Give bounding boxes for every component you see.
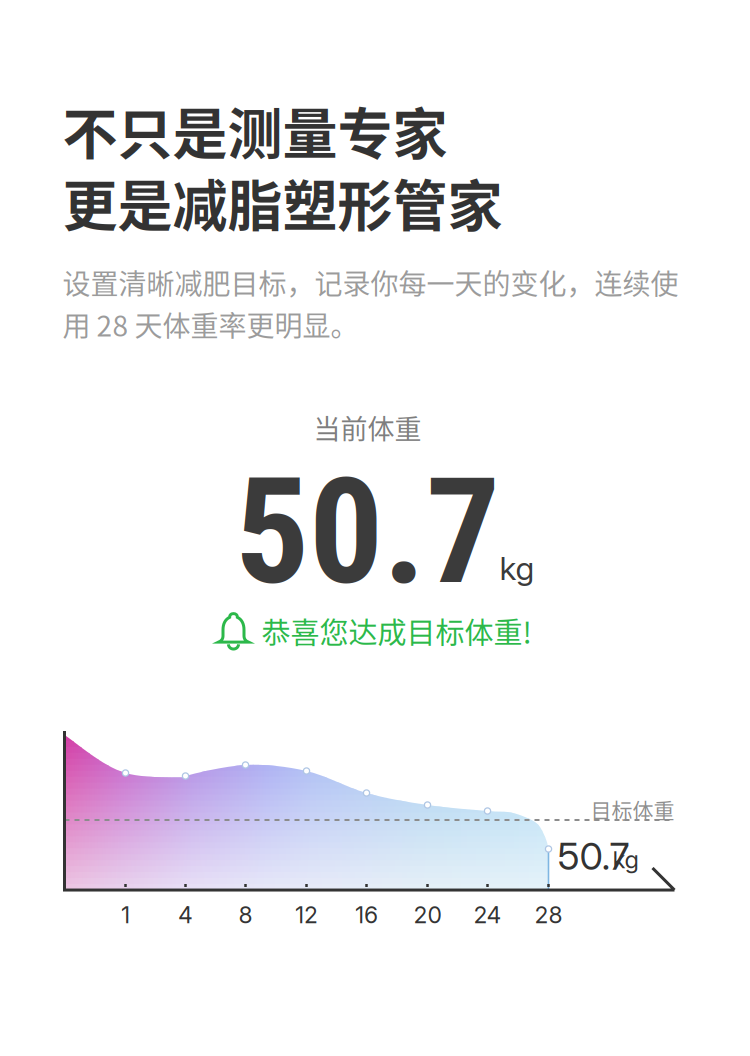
staticText: 24 — [473, 901, 501, 929]
staticText: 更是减脂塑形管家 — [62, 162, 502, 242]
staticText: 12 — [295, 901, 318, 929]
staticText: 8 — [238, 901, 252, 929]
staticText: 20 — [413, 901, 441, 929]
staticText: 28 — [534, 901, 562, 929]
staticText: 用 28 天体重率更明显。 — [62, 304, 358, 344]
staticText: 4 — [178, 901, 193, 929]
staticText: 当前体重 — [313, 408, 421, 447]
staticText: 16 — [355, 901, 378, 929]
staticText: 1 — [121, 901, 130, 929]
staticText: 设置清晰减肥目标，记录你每一天的变化，连续使 — [62, 262, 678, 302]
staticText: kg — [612, 845, 638, 874]
staticText: 恭喜您达成目标体重! — [261, 610, 531, 652]
staticText: kg — [499, 549, 534, 588]
staticText: 50.7 — [235, 446, 500, 618]
staticText: 50.7 — [557, 833, 629, 879]
staticText: 不只是测量专家 — [62, 90, 447, 170]
staticText: 目标体重 — [590, 794, 674, 824]
